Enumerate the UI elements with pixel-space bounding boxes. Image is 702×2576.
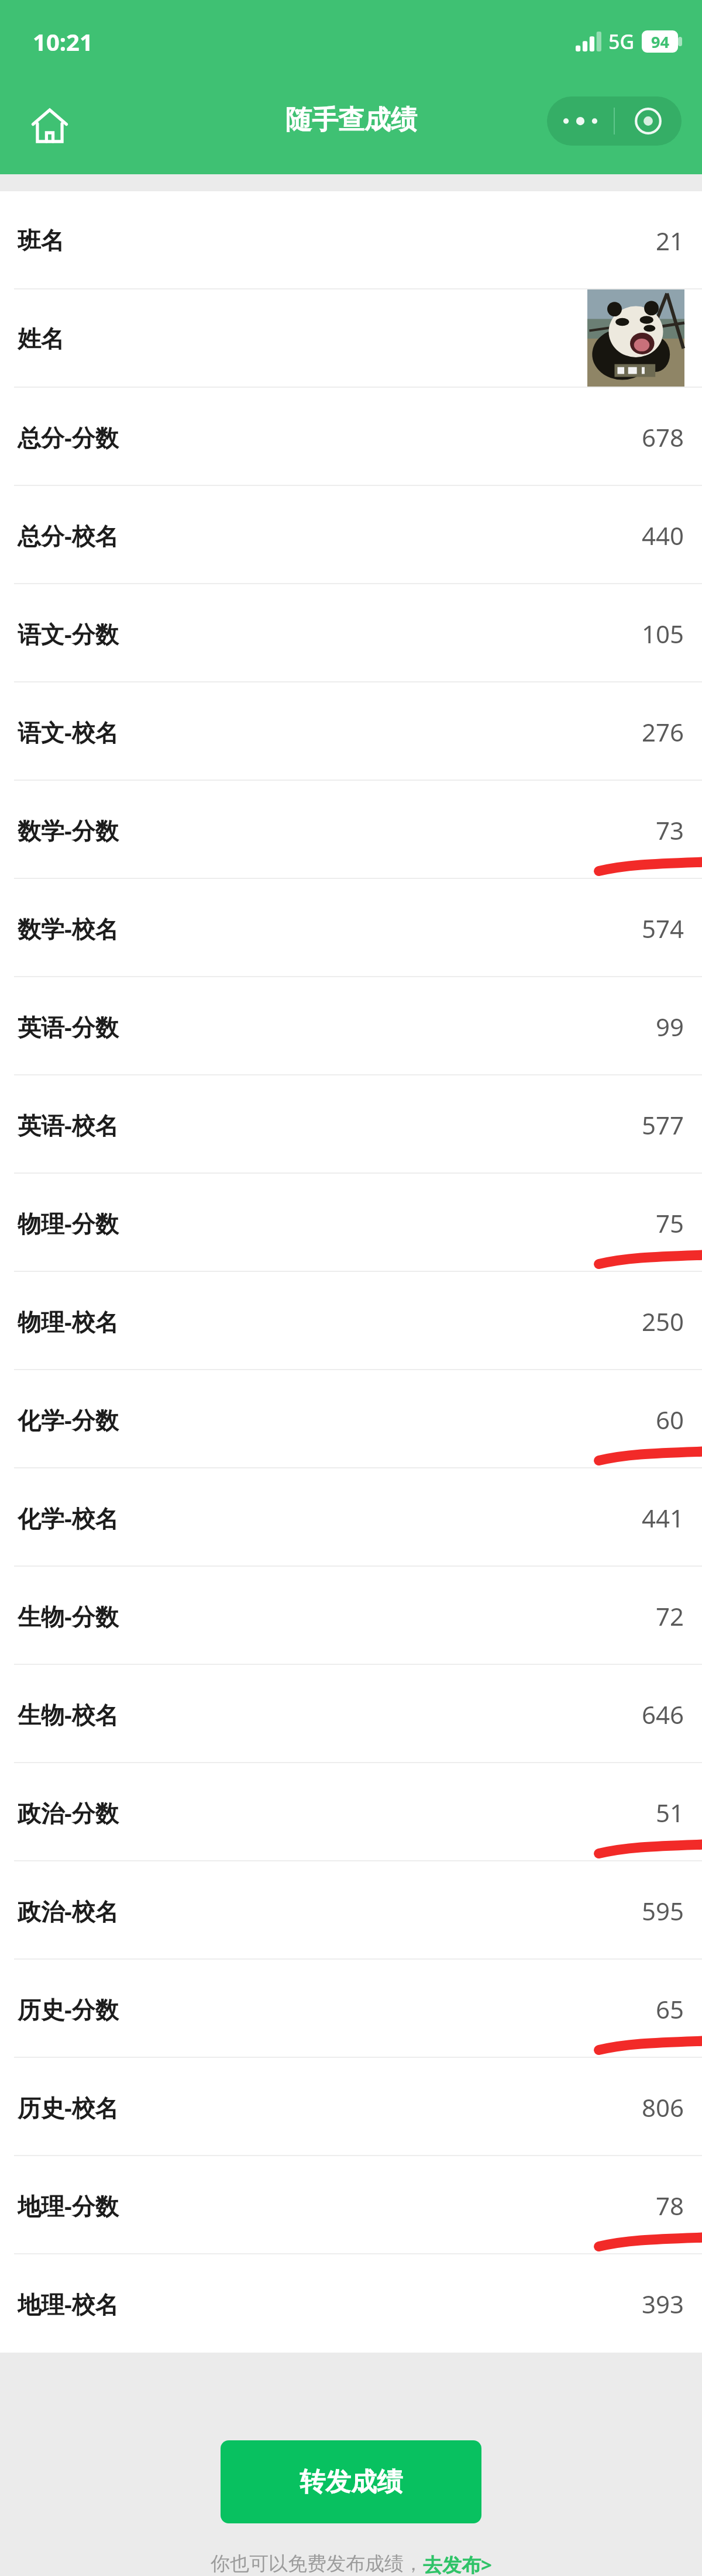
button[interactable]: 物理-校名 — [0, 1272, 702, 1370]
staticText: 574 — [642, 912, 684, 945]
staticText: 276 — [642, 715, 684, 749]
staticText: 60 — [656, 1403, 684, 1436]
staticText: 总分-校名 — [18, 519, 119, 551]
button[interactable]: 物理-分数 — [0, 1174, 702, 1272]
staticText: 646 — [642, 1698, 684, 1731]
staticText: 678 — [642, 420, 684, 454]
staticText: 姓名 — [18, 324, 64, 353]
staticText: 5G — [608, 28, 635, 55]
button[interactable]: 政治-分数 — [0, 1763, 702, 1861]
staticText: 语文-分数 — [18, 618, 119, 650]
button[interactable]: 班名 — [0, 191, 702, 289]
staticText: 转发成绩 — [300, 2466, 402, 2498]
button[interactable]: 英语-校名 — [0, 1075, 702, 1174]
staticText: 72 — [656, 1599, 684, 1633]
button[interactable]: 数学-校名 — [0, 879, 702, 977]
button[interactable]: 总分-校名 — [0, 486, 702, 584]
staticText: 440 — [642, 519, 684, 552]
staticText: 物理-校名 — [18, 1305, 119, 1337]
staticText: 10:21 — [33, 26, 93, 57]
button[interactable]: 总分-分数 — [0, 388, 702, 486]
staticText: 去发布> — [423, 2551, 492, 2576]
staticText: 577 — [642, 1108, 684, 1142]
staticText: 数学-校名 — [18, 912, 119, 944]
button[interactable]: 英语-分数 — [0, 977, 702, 1075]
staticText: 物理-分数 — [18, 1207, 119, 1239]
staticText: 250 — [642, 1305, 684, 1338]
staticText: 51 — [656, 1796, 684, 1829]
staticText: 65 — [656, 1992, 684, 2026]
staticText: 生物-校名 — [18, 1698, 119, 1730]
staticText: 数学-分数 — [18, 814, 119, 846]
staticText: 78 — [656, 2189, 684, 2222]
staticText: 806 — [642, 2091, 684, 2124]
staticText: 历史-分数 — [18, 1993, 119, 2025]
button[interactable]: 语文-分数 — [0, 584, 702, 682]
staticText: 语文-校名 — [18, 716, 119, 748]
button[interactable]: 数学-分数 — [0, 781, 702, 879]
staticText: 化学-分数 — [18, 1403, 119, 1436]
staticText: 化学-校名 — [18, 1502, 119, 1534]
button[interactable]: 化学-校名 — [0, 1468, 702, 1567]
staticText: 75 — [656, 1206, 684, 1240]
staticText: 你也可以免费发布成绩， — [211, 2551, 423, 2576]
staticText: 73 — [656, 813, 684, 847]
staticText: 总分-分数 — [18, 421, 119, 453]
staticText: 英语-校名 — [18, 1109, 119, 1141]
staticText: 历史-校名 — [18, 2091, 119, 2123]
staticText: 班名 — [18, 226, 64, 255]
button[interactable]: 生物-校名 — [0, 1665, 702, 1763]
button[interactable]: 地理-分数 — [0, 2156, 702, 2254]
staticText: 105 — [642, 617, 684, 650]
staticText: 随手查成绩 — [285, 104, 417, 137]
button[interactable]: 转发成绩 — [221, 2440, 481, 2523]
button[interactable]: 化学-分数 — [0, 1370, 702, 1468]
staticText: 21 — [656, 224, 684, 257]
button[interactable]: 姓名 — [0, 289, 702, 388]
button[interactable]: Menu and close — [547, 96, 682, 146]
staticText: 地理-分数 — [18, 2189, 119, 2222]
staticText: 393 — [642, 2287, 684, 2320]
button[interactable]: 政治-校名 — [0, 1861, 702, 1960]
staticText: 94 — [651, 31, 669, 53]
button[interactable]: 你也可以免费发布成绩， — [211, 2551, 492, 2576]
staticText: 英语-分数 — [18, 1011, 119, 1043]
button[interactable]: 地理-校名 — [0, 2254, 702, 2353]
button[interactable]: Home — [18, 95, 82, 157]
staticText: 595 — [642, 1894, 684, 1927]
button[interactable]: 语文-校名 — [0, 682, 702, 781]
button[interactable]: 历史-校名 — [0, 2058, 702, 2156]
staticText: 政治-校名 — [18, 1895, 119, 1927]
button[interactable]: 历史-分数 — [0, 1960, 702, 2058]
button[interactable]: 生物-分数 — [0, 1567, 702, 1665]
staticText: 441 — [642, 1501, 684, 1534]
staticText: 99 — [656, 1010, 684, 1043]
staticText: 政治-分数 — [18, 1796, 119, 1829]
staticText: 地理-校名 — [18, 2288, 119, 2320]
staticText: 生物-分数 — [18, 1600, 119, 1632]
